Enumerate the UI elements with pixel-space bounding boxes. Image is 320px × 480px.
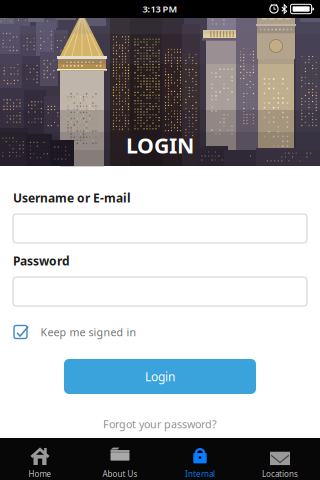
staticText: Internal [185,468,215,479]
staticText: 3:13 PM [142,3,177,15]
staticText: Keep me signed in [40,325,136,339]
button[interactable]: Internal [160,438,240,480]
button[interactable]: Forgot your password? [0,416,320,432]
staticText: Password [13,253,70,269]
staticText: LOGIN [126,131,194,159]
staticText: Username or E-mail [13,190,131,206]
button[interactable]: Home [0,438,80,480]
button[interactable]: About Us [80,438,160,480]
staticText: Login [145,368,175,384]
button[interactable]: Keep me signed in [14,324,308,340]
staticText: About Us [102,468,137,479]
button[interactable]: Login [64,359,256,394]
staticText: Forgot your password? [103,417,217,431]
staticText: Home [28,468,51,479]
staticText: Locations [262,468,298,479]
button[interactable]: Locations [240,438,320,480]
